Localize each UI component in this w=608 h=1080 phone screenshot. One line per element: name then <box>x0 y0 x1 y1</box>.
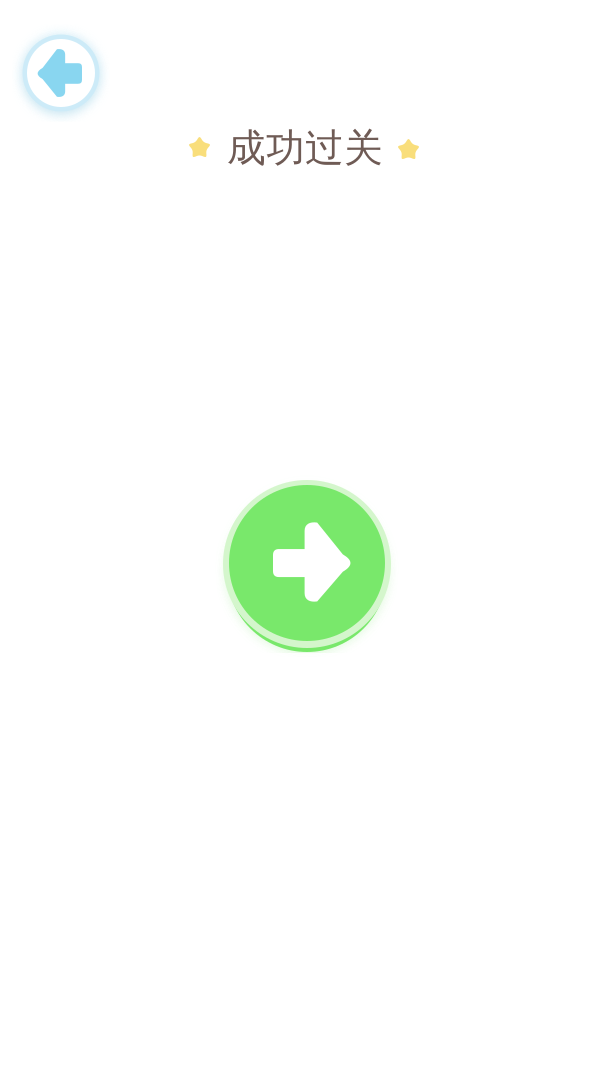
button[interactable]: Back <box>15 27 107 119</box>
staticText: 成功过关 <box>227 124 383 172</box>
button[interactable]: Next <box>214 470 400 656</box>
